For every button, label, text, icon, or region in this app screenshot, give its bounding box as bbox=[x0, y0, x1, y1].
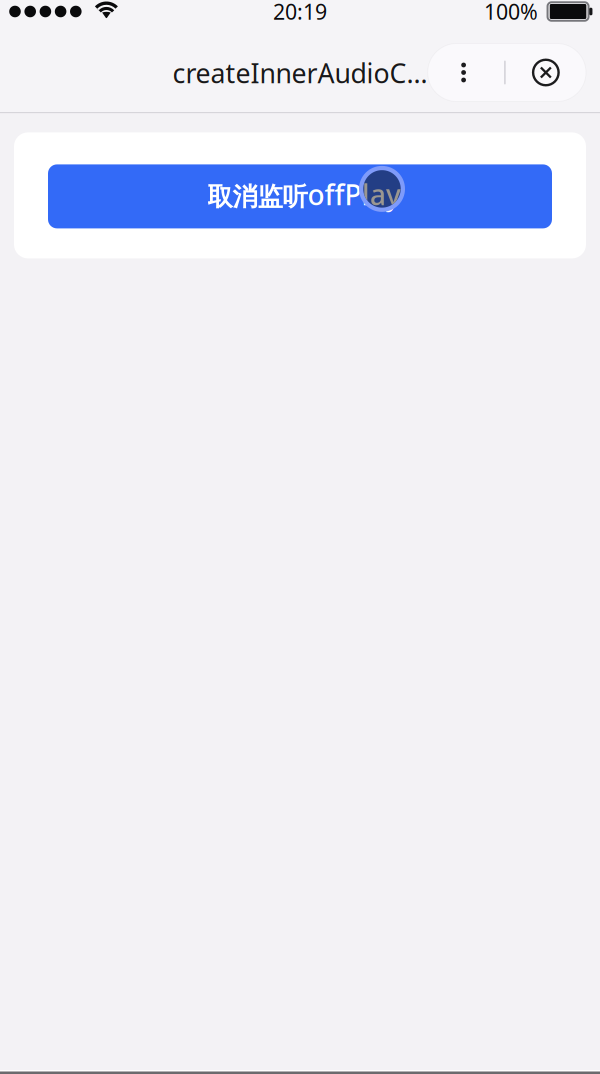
staticText: 取消监听offPlay bbox=[207, 176, 400, 213]
button[interactable]: Close mini program bbox=[506, 43, 586, 101]
button[interactable]: 取消监听offPlay bbox=[48, 164, 552, 228]
button[interactable]: More options bbox=[429, 43, 498, 101]
staticText: createInnerAudioC… bbox=[172, 55, 427, 91]
staticText: 取消监听offPlay bbox=[208, 176, 401, 213]
staticText: 20:19 bbox=[273, 0, 327, 26]
staticText: 100% bbox=[484, 0, 538, 26]
